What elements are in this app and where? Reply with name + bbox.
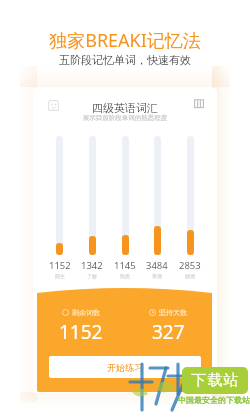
- staticText: 中国最安全的下载站: [178, 395, 250, 405]
- staticText: 1342: [81, 259, 103, 272]
- staticText: 精通: [185, 273, 195, 279]
- button[interactable]: 词库: [48, 100, 59, 111]
- staticText: 开始练习: [107, 362, 143, 373]
- staticText: 掌握: [152, 273, 162, 279]
- staticText: 独家BREAKI记忆法: [0, 28, 250, 53]
- staticText: 展示目前阶段单词的熟悉程度: [0, 114, 250, 122]
- staticText: 坚持天数: [159, 308, 187, 317]
- staticText: 下载站: [191, 371, 239, 390]
- button[interactable]: 开始练习: [49, 356, 201, 378]
- staticText: 1152: [49, 259, 71, 272]
- staticText: 了解: [87, 273, 97, 279]
- button[interactable]: 统计: [194, 99, 204, 109]
- staticText: 剩余词数: [72, 308, 100, 317]
- staticText: 熟悉: [120, 273, 130, 279]
- staticText: 327: [152, 319, 185, 345]
- staticText: 3484: [146, 259, 168, 272]
- staticText: 2853: [179, 259, 201, 272]
- staticText: 陌生: [55, 273, 65, 279]
- staticText: 1152: [59, 319, 103, 345]
- staticText: 四级英语词汇: [0, 101, 250, 115]
- staticText: 五阶段记忆单词，快速有效: [0, 53, 250, 67]
- staticText: 1145: [114, 259, 136, 272]
